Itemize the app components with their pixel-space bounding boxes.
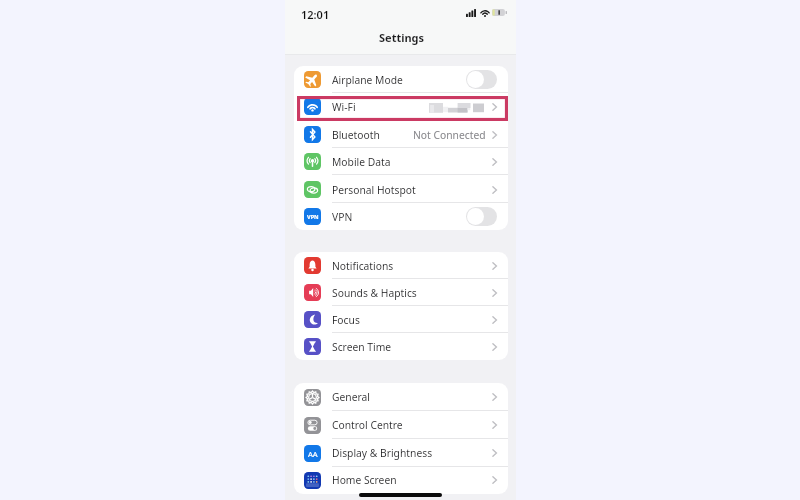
staticText: Display & Brightness [332, 446, 433, 460]
staticText: Mobile Data [332, 155, 391, 169]
button[interactable]: VPN [294, 203, 508, 230]
staticText: Bluetooth [332, 128, 380, 142]
staticText: Not Connected [413, 128, 486, 142]
staticText: 12:01 [301, 7, 330, 22]
staticText: AA [308, 449, 318, 459]
staticText: VPN [307, 213, 319, 221]
button[interactable]: Airplane Mode [294, 66, 508, 93]
button[interactable]: General [294, 383, 508, 411]
staticText: Home Screen [332, 473, 397, 487]
button[interactable]: Toggle [466, 70, 497, 89]
staticText: Airplane Mode [332, 73, 403, 87]
staticText: Notifications [332, 259, 394, 273]
button[interactable]: Notifications [294, 252, 508, 279]
button[interactable]: Control Centre [294, 411, 508, 439]
button[interactable]: Home Screen [294, 466, 508, 494]
staticText: Focus [332, 313, 360, 327]
button[interactable]: Mobile Data [294, 148, 508, 175]
button[interactable]: Wi-Fi [294, 93, 508, 120]
button[interactable]: Bluetooth [294, 121, 508, 148]
staticText: General [332, 390, 370, 404]
button[interactable]: Toggle [466, 207, 497, 226]
button[interactable]: Sounds & Haptics [294, 279, 508, 306]
staticText: Settings [379, 30, 425, 45]
staticText: VPN [332, 210, 353, 224]
staticText: Wi-Fi [332, 100, 356, 114]
button[interactable]: Focus [294, 306, 508, 333]
button[interactable]: Personal Hotspot [294, 176, 508, 203]
staticText: Sounds & Haptics [332, 286, 417, 300]
button[interactable]: Screen Time [294, 333, 508, 360]
button[interactable]: AA [294, 439, 508, 467]
staticText: Screen Time [332, 340, 392, 354]
staticText: Control Centre [332, 418, 403, 432]
staticText: Personal Hotspot [332, 183, 416, 197]
